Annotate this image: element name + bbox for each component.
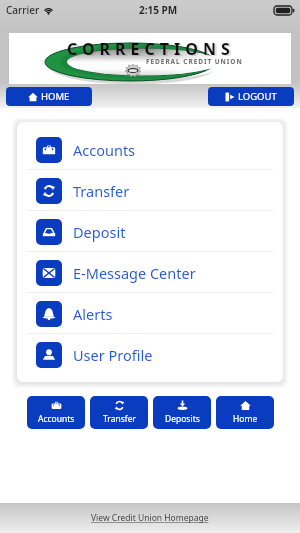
button[interactable]: Deposit	[17, 211, 283, 252]
staticText: CORRECTIONS	[67, 38, 235, 60]
staticText: Deposits	[165, 413, 200, 425]
button[interactable]: Home	[216, 396, 274, 429]
staticText: Accounts	[73, 140, 136, 160]
button[interactable]: E-Message Center	[17, 252, 283, 293]
staticText: Deposit	[73, 222, 126, 242]
staticText: FEDERAL CREDIT UNION	[146, 57, 243, 66]
button[interactable]: Home	[6, 87, 92, 106]
staticText: E-Message Center	[73, 263, 196, 283]
button[interactable]: Accounts	[17, 129, 283, 170]
staticText: Home	[233, 413, 258, 425]
button[interactable]: Deposits	[153, 396, 211, 429]
staticText: CORRECTIONS	[69, 39, 237, 61]
staticText: 2:15 PM	[139, 3, 178, 17]
button[interactable]: Alerts	[17, 293, 283, 334]
button[interactable]: Logout	[208, 87, 294, 106]
button[interactable]: Accounts	[27, 396, 85, 429]
staticText: Accounts	[38, 413, 75, 425]
staticText: Transfer	[73, 181, 130, 201]
staticText: Alerts	[73, 304, 113, 324]
staticText: User Profile	[73, 345, 153, 365]
button[interactable]: User Profile	[17, 334, 283, 375]
staticText: Carrier	[6, 3, 40, 17]
staticText: LOGOUT	[238, 90, 277, 103]
button[interactable]: Transfer	[90, 396, 148, 429]
staticText: Transfer	[103, 413, 136, 425]
staticText: HOME	[41, 90, 70, 103]
button[interactable]: View Credit Union Homepage	[91, 512, 209, 524]
button[interactable]: Transfer	[17, 170, 283, 211]
